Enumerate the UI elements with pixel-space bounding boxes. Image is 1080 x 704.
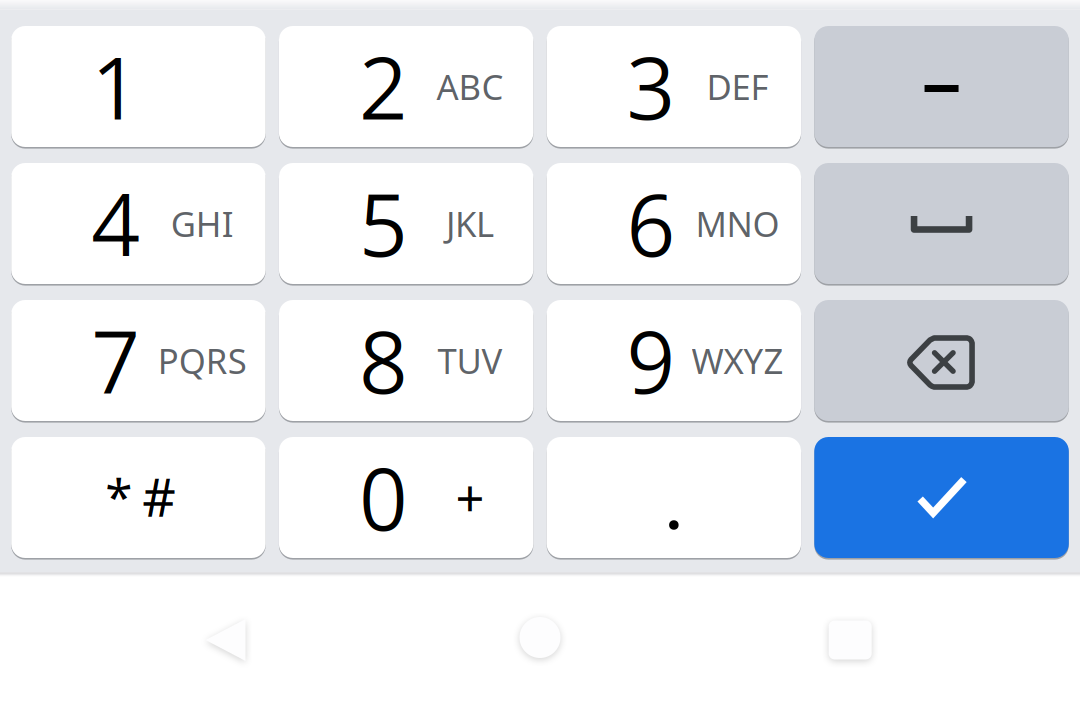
staticText: * <box>105 464 132 529</box>
staticText: DEF <box>707 63 769 109</box>
staticText: GHI <box>171 200 234 246</box>
button[interactable]: 7 <box>11 300 266 421</box>
button[interactable]: Space <box>814 163 1069 284</box>
button[interactable]: Dash <box>814 26 1069 147</box>
button[interactable]: 4 <box>11 163 266 284</box>
staticText: ABC <box>436 63 503 109</box>
staticText: 9 <box>627 302 676 419</box>
staticText: 6 <box>627 165 676 282</box>
button[interactable]: 3 <box>547 26 801 147</box>
staticText: 5 <box>359 165 408 282</box>
staticText: 8 <box>359 302 408 419</box>
staticText: PQRS <box>158 337 247 383</box>
button[interactable]: 8 <box>279 300 533 421</box>
button[interactable]: Backspace <box>814 300 1069 421</box>
button[interactable]: 9 <box>547 300 801 421</box>
staticText: 1 <box>91 28 140 145</box>
button[interactable]: Period <box>547 437 801 558</box>
staticText: 3 <box>627 28 676 145</box>
staticText: 2 <box>359 28 408 145</box>
button[interactable]: Enter <box>814 437 1069 558</box>
staticText: # <box>142 462 176 531</box>
staticText: 4 <box>91 165 140 282</box>
button[interactable]: 2 <box>279 26 533 147</box>
button[interactable]: 0 <box>279 437 533 558</box>
staticText: 0 <box>359 439 408 556</box>
staticText: + <box>455 464 484 531</box>
button[interactable]: 1 <box>11 26 266 147</box>
button[interactable]: 5 <box>279 163 533 284</box>
staticText: 7 <box>91 302 140 419</box>
button[interactable]: Star and pound <box>11 437 266 558</box>
button[interactable]: 6 <box>547 163 801 284</box>
staticText: JKL <box>446 200 494 246</box>
staticText: MNO <box>696 200 780 246</box>
staticText: WXYZ <box>692 337 784 383</box>
staticText: TUV <box>437 337 502 383</box>
